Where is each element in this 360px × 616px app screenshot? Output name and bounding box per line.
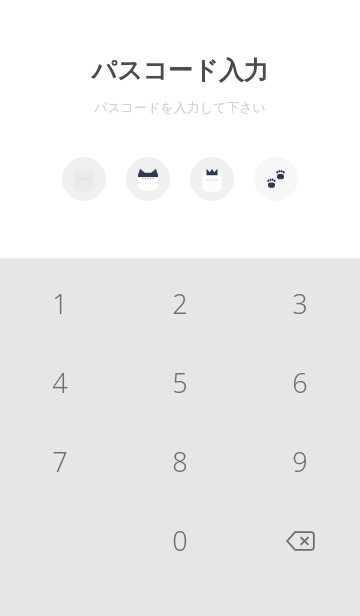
button[interactable]: Passcode digit 2	[126, 157, 170, 201]
button[interactable]: 7	[0, 422, 120, 501]
staticText: 9	[292, 443, 308, 480]
staticText: 6	[292, 364, 308, 401]
button[interactable]: Delete	[240, 501, 360, 580]
staticText: パスコード入力	[91, 55, 269, 86]
button[interactable]: 1	[0, 264, 120, 343]
button[interactable]: 6	[240, 343, 360, 422]
button[interactable]: 0	[120, 501, 240, 580]
button[interactable]: Passcode digit 3	[190, 157, 234, 201]
button[interactable]: 2	[120, 264, 240, 343]
staticText: 5	[172, 364, 188, 401]
button[interactable]: 5	[120, 343, 240, 422]
staticText: 4	[52, 364, 68, 401]
button[interactable]: Passcode digit 4	[254, 157, 298, 201]
staticText: 0	[172, 522, 188, 559]
button[interactable]: 8	[120, 422, 240, 501]
button[interactable]: Passcode digit 1	[62, 157, 106, 201]
staticText: 2	[172, 285, 188, 322]
staticText: パスコードを入力して下さい	[94, 99, 266, 115]
staticText: 7	[52, 443, 68, 480]
staticText: 8	[172, 443, 188, 480]
button[interactable]: 3	[240, 264, 360, 343]
button[interactable]: 4	[0, 343, 120, 422]
staticText: 3	[292, 285, 308, 322]
staticText: 1	[52, 285, 68, 322]
button[interactable]: 9	[240, 422, 360, 501]
